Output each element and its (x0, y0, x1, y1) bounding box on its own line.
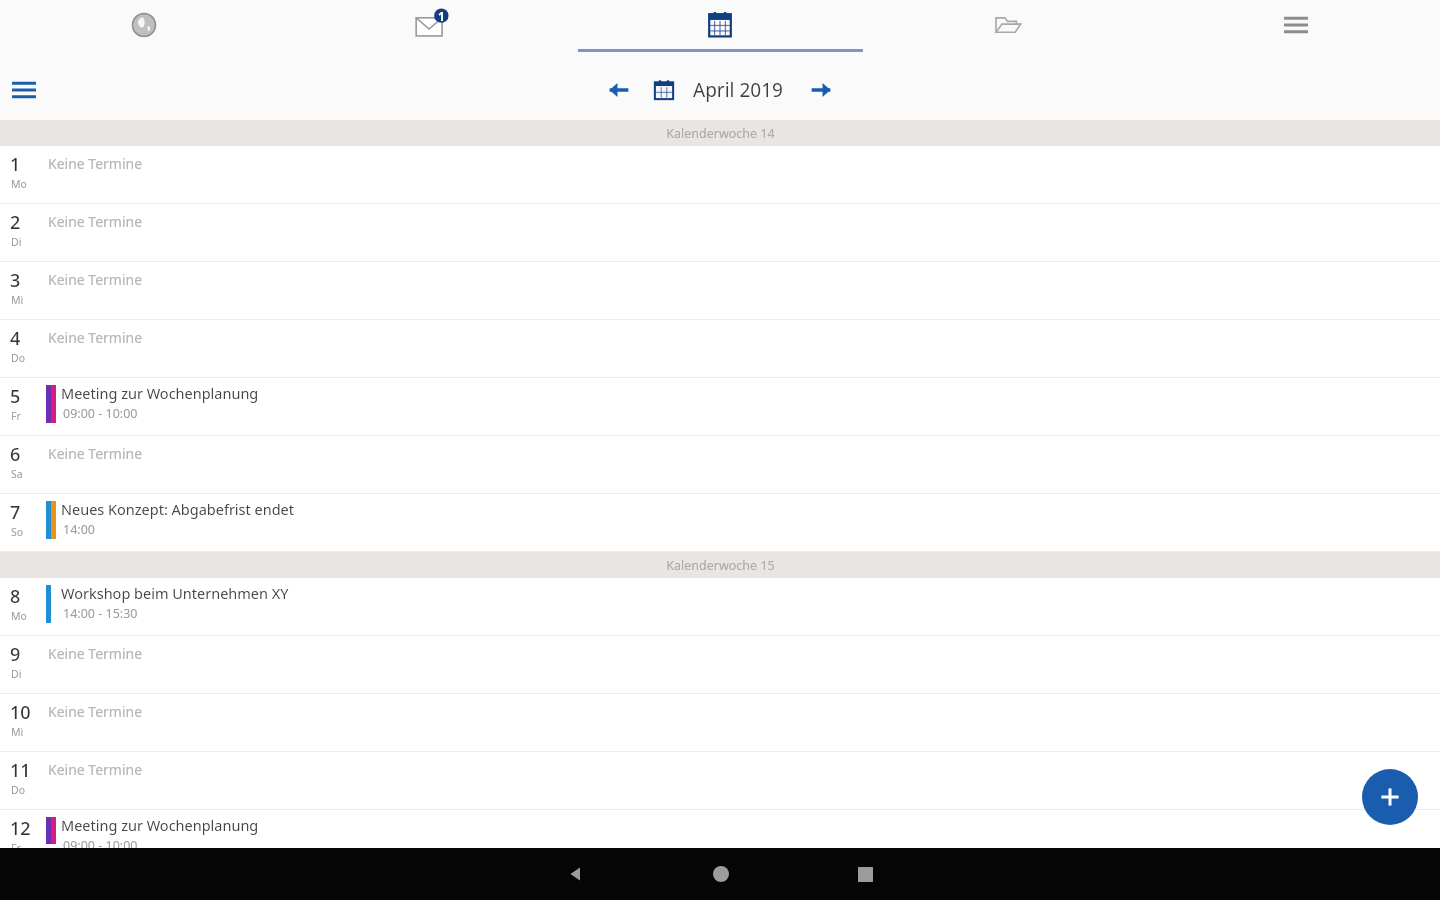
staticText: Fr (11, 409, 21, 423)
button[interactable]: Home (648, 848, 793, 900)
staticText: Mi (11, 725, 24, 739)
staticText: 1 (438, 8, 445, 24)
button[interactable]: 10 (0, 694, 1440, 751)
staticText: Mi (11, 293, 24, 307)
staticText: 14:00 (63, 521, 95, 538)
button[interactable]: Menü (1152, 0, 1440, 60)
button[interactable]: Vorheriger Monat (597, 68, 641, 112)
button[interactable]: 7 (0, 494, 1440, 551)
button[interactable]: Kalender (576, 0, 864, 60)
staticText: 6 (10, 442, 21, 467)
button[interactable]: 9 (0, 636, 1440, 693)
staticText: 4 (10, 326, 21, 351)
staticText: Meeting zur Wochenplanung (61, 383, 259, 403)
button[interactable]: 6 (0, 436, 1440, 493)
staticText: Kalenderwoche 14 (666, 125, 775, 142)
staticText: 12 (10, 816, 31, 841)
staticText: Keine Termine (48, 644, 143, 663)
staticText: Mo (11, 177, 27, 191)
button[interactable]: Recents (793, 848, 938, 900)
button[interactable]: Heute (647, 73, 681, 107)
staticText: 11 (10, 758, 31, 783)
staticText: Keine Termine (48, 444, 143, 463)
button[interactable]: Back (503, 848, 648, 900)
button[interactable]: 11 (0, 752, 1440, 809)
staticText: 14:00 - 15:30 (63, 605, 138, 622)
staticText: 09:00 - 10:00 (63, 405, 138, 422)
staticText: 3 (10, 268, 21, 293)
button[interactable]: 5 (0, 378, 1440, 435)
staticText: Kalenderwoche 15 (666, 557, 775, 574)
staticText: Mo (11, 609, 27, 623)
button[interactable]: Web (0, 0, 288, 60)
staticText: 7 (10, 500, 21, 525)
button[interactable]: Nächster Monat (799, 68, 843, 112)
staticText: Di (11, 667, 22, 681)
button[interactable]: 12 (0, 810, 1440, 837)
staticText: 5 (10, 384, 21, 409)
staticText: April 2019 (693, 77, 783, 103)
staticText: Do (11, 783, 26, 797)
staticText: 10 (10, 700, 31, 725)
staticText: Keine Termine (48, 702, 143, 721)
button[interactable]: Neuer Termin (1362, 769, 1418, 825)
button[interactable]: 3 (0, 262, 1440, 319)
staticText: 1 (10, 152, 21, 177)
staticText: Keine Termine (48, 328, 143, 347)
button[interactable]: 1 (0, 146, 1440, 203)
staticText: Keine Termine (48, 760, 143, 779)
staticText: Sa (11, 467, 23, 481)
staticText: 8 (10, 584, 21, 609)
staticText: So (11, 525, 24, 539)
button[interactable]: 2 (0, 204, 1440, 261)
staticText: Workshop beim Unternehmen XY (61, 583, 289, 603)
staticText: 9 (10, 642, 21, 667)
staticText: 2 (10, 210, 21, 235)
staticText: Keine Termine (48, 212, 143, 231)
button[interactable]: 8 (0, 578, 1440, 635)
staticText: Meeting zur Wochenplanung (61, 815, 259, 835)
staticText: Do (11, 351, 26, 365)
staticText: Keine Termine (48, 154, 143, 173)
button[interactable]: Navigation (6, 72, 42, 108)
button[interactable]: 4 (0, 320, 1440, 377)
staticText: Neues Konzept: Abgabefrist endet (61, 499, 295, 519)
staticText: Di (11, 235, 22, 249)
button[interactable]: Dateien (864, 0, 1152, 60)
staticText: Fr (11, 841, 21, 855)
staticText: Keine Termine (48, 270, 143, 289)
button[interactable]: Nachrichten (288, 0, 576, 60)
staticText: 09:00 - 10:00 (63, 837, 138, 854)
